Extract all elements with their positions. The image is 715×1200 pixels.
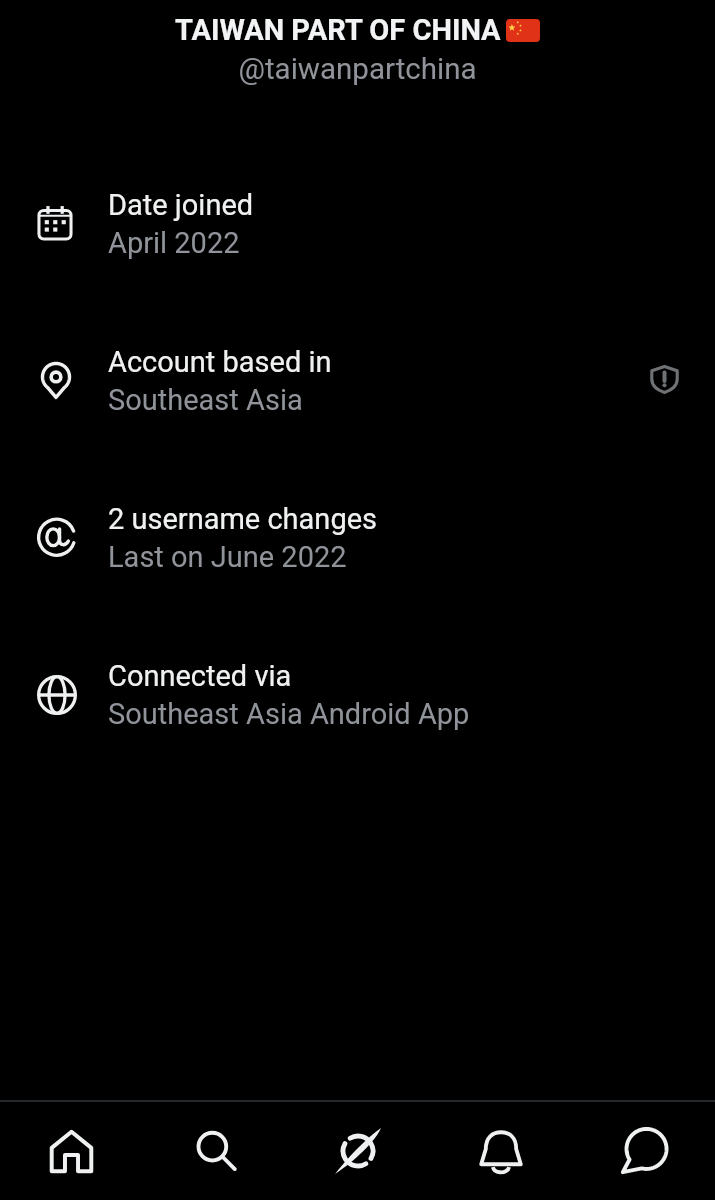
button[interactable]: Grok [286, 1102, 429, 1200]
staticText: Southeast Asia [108, 383, 303, 417]
button[interactable]: Notifications [429, 1102, 572, 1200]
button[interactable]: 2 username changes [0, 499, 715, 656]
staticText: Last on June 2022 [108, 540, 347, 574]
button[interactable]: Home [0, 1102, 143, 1200]
staticText: @taiwanpartchina [0, 52, 715, 87]
button[interactable]: Search [143, 1102, 286, 1200]
staticText: Account based in [108, 345, 332, 379]
staticText: 2 username changes [108, 502, 378, 536]
staticText: Date joined [108, 188, 254, 222]
staticText: Connected via [108, 659, 292, 693]
staticText: TAIWAN PART OF CHINA [175, 13, 501, 47]
button[interactable]: Date joined [0, 185, 715, 342]
staticText: April 2022 [108, 226, 240, 260]
button[interactable]: Messages [572, 1102, 715, 1200]
button[interactable]: Connected via [0, 656, 715, 813]
button[interactable]: Account based in [0, 342, 715, 499]
staticText: Southeast Asia Android App [108, 697, 470, 731]
